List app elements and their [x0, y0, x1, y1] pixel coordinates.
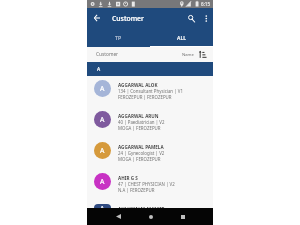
button[interactable]: Back: [89, 10, 105, 26]
button[interactable]: Back: [110, 208, 127, 225]
staticText: 6:15: [201, 1, 211, 7]
staticText: A: [100, 146, 105, 155]
button[interactable]: Sort by name: [198, 50, 207, 59]
staticText: AHLUWALIA MANJIT: [118, 206, 165, 208]
staticText: AGGARWAL PAMELA: [118, 144, 164, 150]
button[interactable]: A: [87, 107, 213, 138]
button[interactable]: TP: [87, 28, 150, 46]
button[interactable]: A: [87, 169, 213, 200]
button[interactable]: Recents: [174, 208, 191, 225]
button[interactable]: ALL: [150, 28, 213, 46]
staticText: MOGA | FEROZEPUR: [118, 125, 161, 131]
staticText: A: [100, 115, 105, 124]
staticText: FEROZEPUR | FEROZEPUR: [118, 94, 172, 100]
staticText: Name: [182, 52, 194, 58]
staticText: A: [97, 66, 101, 73]
staticText: Customer: [112, 14, 144, 23]
staticText: MOGA | FEROZEPUR: [118, 156, 161, 162]
staticText: A: [100, 177, 105, 186]
staticText: AGGARWAL ALOK: [118, 82, 158, 88]
staticText: Customer: [96, 51, 119, 58]
button[interactable]: A: [87, 76, 213, 107]
button[interactable]: A: [87, 200, 213, 208]
staticText: N.A | FEROZEPUR: [118, 187, 155, 193]
staticText: ALL: [177, 34, 186, 41]
button[interactable]: A: [87, 138, 213, 169]
staticText: 24 | Gynecologist | V2: [118, 150, 165, 156]
button[interactable]: More options: [199, 11, 213, 25]
staticText: 47 | CHEST PHYSICIAN | V2: [118, 181, 175, 187]
button[interactable]: Search: [184, 11, 198, 25]
staticText: AGGARWAL ARUN: [118, 113, 159, 119]
staticText: TP: [115, 34, 122, 41]
staticText: A: [100, 84, 105, 93]
staticText: A: [100, 204, 105, 208]
staticText: 134 | Consultant Physician | V1: [118, 88, 183, 94]
staticText: AHIR G S: [118, 175, 138, 181]
staticText: 40 | Paediatrician | V2: [118, 119, 165, 125]
button[interactable]: Home: [142, 208, 159, 225]
